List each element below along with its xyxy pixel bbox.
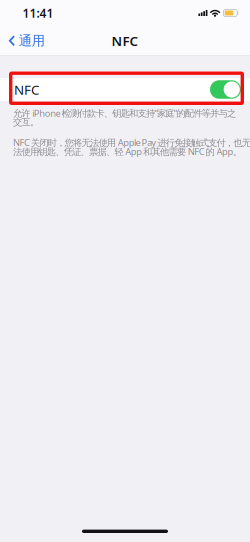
button[interactable]: 通用 <box>0 28 51 53</box>
staticText: NFC 关闭时，您将无法使用 Apple Pay 进行免接触式支付，也无 <box>13 136 250 149</box>
staticText: 交互。 <box>13 116 39 128</box>
staticText: 法使用钥匙、凭证、票据、轻 App 和其他需要 NFC 的 App。 <box>13 145 242 158</box>
button[interactable]: NFC <box>0 78 250 101</box>
staticText: NFC <box>111 32 138 50</box>
staticText: 11:41 <box>22 5 53 21</box>
staticText: 通用 <box>19 33 45 49</box>
staticText: NFC <box>14 81 39 98</box>
staticText: 允许 iPhone 检测付款卡、钥匙和支持“家庭”的配件等并与之 <box>13 107 236 119</box>
